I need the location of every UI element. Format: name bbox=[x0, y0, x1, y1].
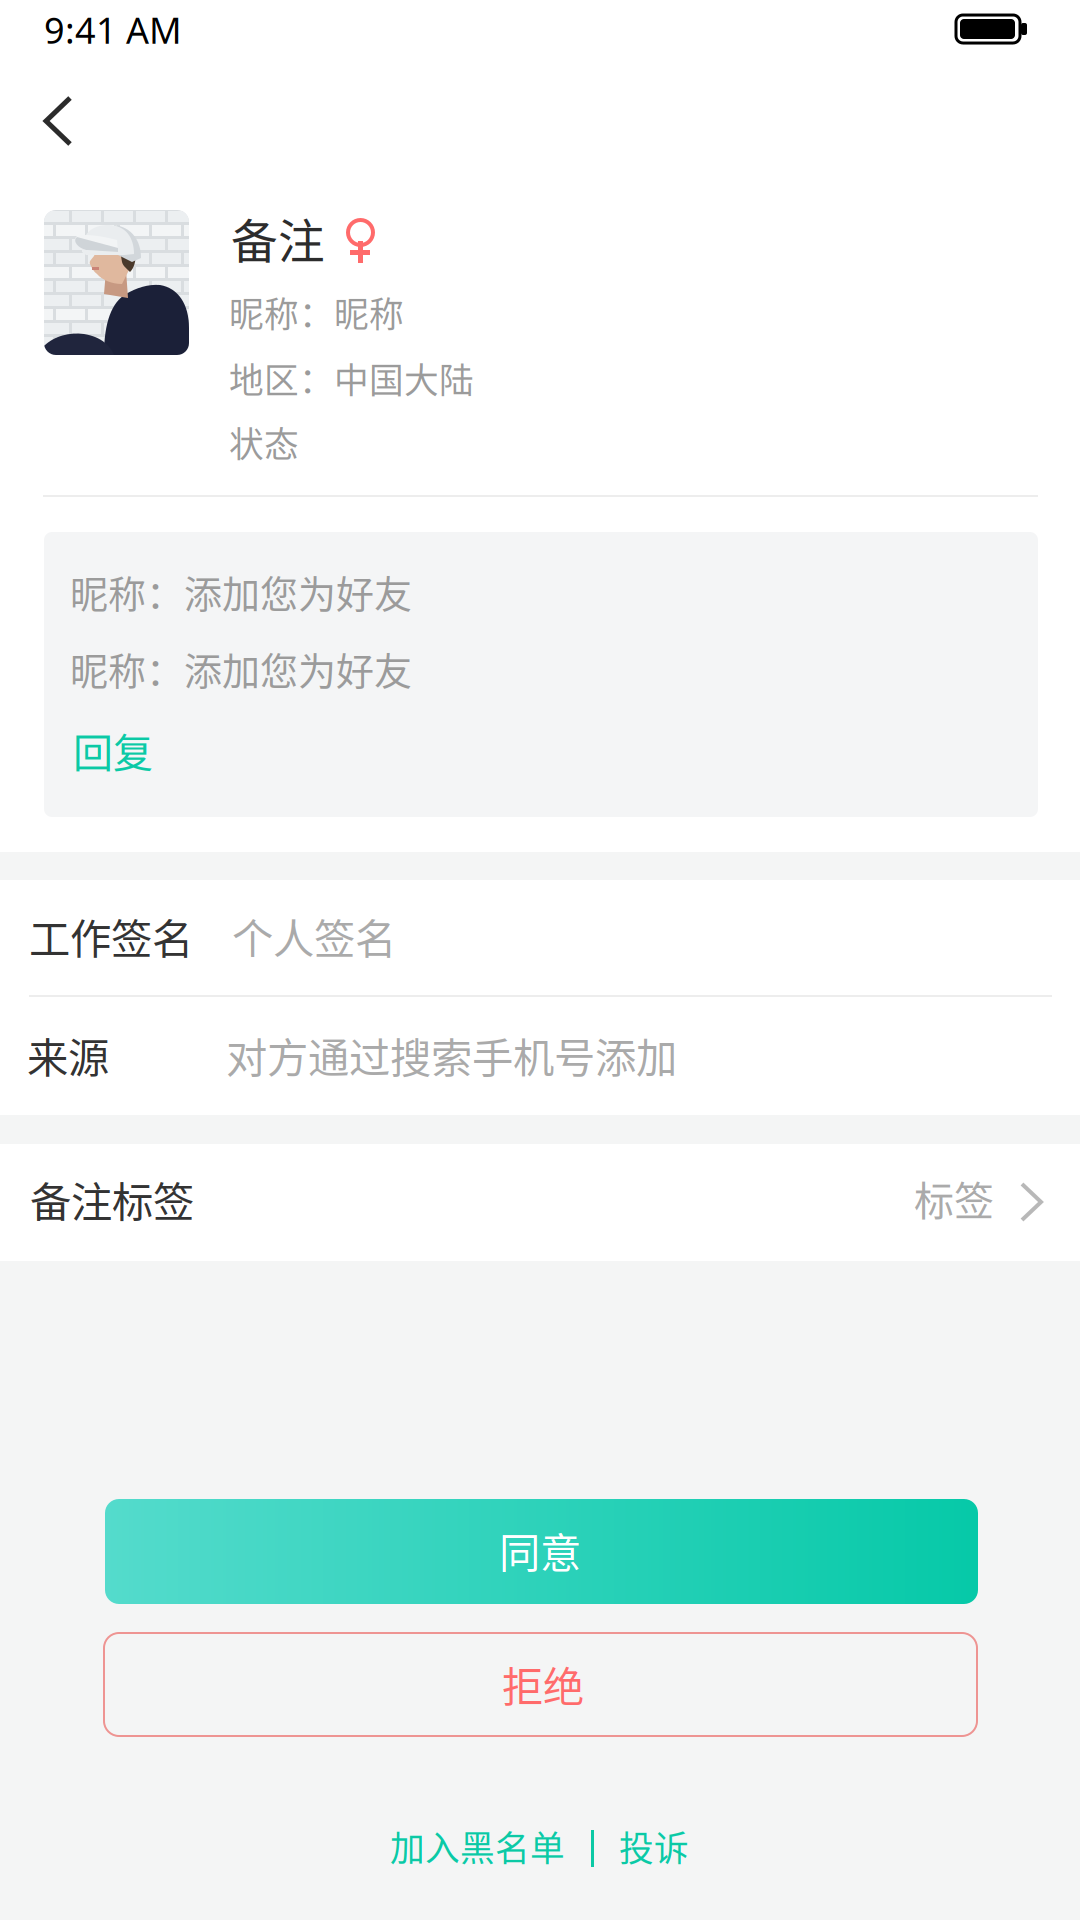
staticText: 同意 bbox=[499, 1520, 581, 1580]
button[interactable]: 回复 bbox=[70, 719, 180, 777]
staticText: 备注标签 bbox=[30, 1169, 194, 1229]
staticText: 对方通过搜索手机号添加 bbox=[226, 1025, 677, 1085]
staticText: 个人签名 bbox=[232, 906, 396, 966]
button[interactable]: 同意 bbox=[105, 1499, 978, 1604]
staticText: 昵称：昵称 bbox=[229, 287, 404, 337]
staticText: 9:41 AM bbox=[44, 6, 182, 54]
staticText: 状态 bbox=[229, 417, 299, 467]
button[interactable]: Back bbox=[0, 77, 110, 163]
staticText: 拒绝 bbox=[502, 1654, 584, 1714]
button[interactable]: 备注标签 bbox=[0, 1144, 1080, 1261]
staticText: 备注 bbox=[231, 204, 325, 272]
staticText: 昵称：添加您为好友 bbox=[70, 564, 412, 619]
button[interactable]: 拒绝 bbox=[104, 1633, 977, 1736]
button[interactable]: 加入黑名单 bbox=[390, 1821, 570, 1877]
button[interactable]: 投诉 bbox=[619, 1821, 695, 1877]
staticText: 加入黑名单 bbox=[390, 1821, 565, 1871]
staticText: 投诉 bbox=[619, 1821, 689, 1871]
staticText: 工作签名 bbox=[29, 906, 193, 966]
staticText: 来源 bbox=[27, 1025, 109, 1085]
staticText: 回复 bbox=[73, 721, 153, 779]
staticText: 昵称：添加您为好友 bbox=[70, 641, 412, 696]
staticText: 标签 bbox=[914, 1169, 994, 1227]
staticText: 地区：中国大陆 bbox=[229, 353, 474, 403]
